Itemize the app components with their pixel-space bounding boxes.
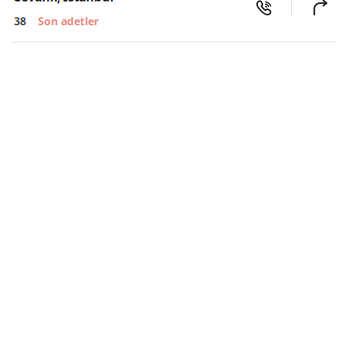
staticText: Cevahir, İstanbul xyxy=(13,0,114,5)
staticText: 38 xyxy=(14,14,26,28)
button[interactable]: Call xyxy=(246,0,282,20)
button[interactable]: Share xyxy=(303,0,339,20)
staticText: Son adetler xyxy=(38,14,99,28)
